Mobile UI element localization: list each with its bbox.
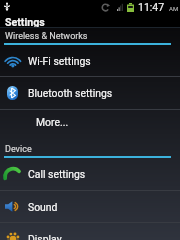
- staticText: Bluetooth settings: [28, 87, 113, 99]
- staticText: Device: [5, 144, 32, 155]
- button[interactable]: Sound: [0, 191, 180, 222]
- button[interactable]: Bluetooth settings: [0, 77, 180, 109]
- button[interactable]: Display: [0, 223, 180, 240]
- staticText: Settings: [5, 16, 45, 28]
- other: USB connected: [2, 2, 12, 12]
- staticText: Call settings: [28, 168, 86, 180]
- staticText: AM: [169, 5, 179, 12]
- staticText: Sound: [28, 201, 58, 213]
- staticText: 11:47: [138, 1, 165, 13]
- staticText: Wi-Fi settings: [28, 55, 91, 67]
- button[interactable]: Call settings: [0, 158, 180, 190]
- staticText: Display: [28, 233, 62, 240]
- staticText: More...: [36, 116, 69, 128]
- button[interactable]: Wi-Fi settings: [0, 45, 180, 76]
- button[interactable]: More...: [0, 110, 180, 133]
- staticText: Wireless & Networks: [5, 31, 88, 42]
